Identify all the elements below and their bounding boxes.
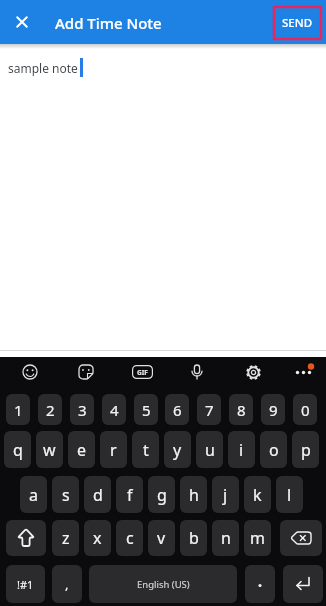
staticText: 9 [269,400,278,420]
button[interactable] [6,520,46,556]
button[interactable]: 4 [102,394,126,425]
staticText: !#1 [17,577,34,592]
button[interactable]: h [180,476,207,513]
button[interactable]: 1 [6,394,30,425]
button[interactable]: o [260,431,287,468]
button[interactable]: 6 [165,394,189,425]
staticText: , [65,575,69,593]
staticText: p [301,439,311,461]
button[interactable]: !#1 [6,565,45,603]
staticText: sample note [8,60,78,76]
staticText: s [62,484,70,506]
button[interactable]: g [148,476,175,513]
button[interactable] [239,358,267,386]
button[interactable]: k [244,476,271,513]
staticText: t [143,439,149,461]
button[interactable] [280,520,322,556]
staticText: u [205,439,215,461]
staticText: y [173,439,182,461]
staticText: o [269,439,279,461]
staticText: i [239,439,244,461]
staticText: m [250,527,265,549]
button[interactable]: i [228,431,255,468]
button[interactable] [8,8,36,36]
button[interactable]: 7 [197,394,221,425]
button[interactable]: English (US) [89,565,237,603]
staticText: w [43,439,56,461]
staticText: 7 [205,400,214,420]
staticText: n [221,527,231,549]
button[interactable]: a [20,476,47,513]
staticText: c [126,527,134,549]
button[interactable]: SEND [274,7,321,39]
staticText: 1 [14,400,23,420]
staticText: 5 [142,400,151,420]
button[interactable]: u [196,431,223,468]
button[interactable]: l [276,476,303,513]
button[interactable] [245,565,275,603]
button[interactable]: 9 [261,394,285,425]
button[interactable]: x [84,520,111,556]
button[interactable]: , [52,565,82,603]
staticText: English (US) [137,578,190,591]
staticText: z [62,527,70,549]
button[interactable] [291,358,319,386]
button[interactable]: f [116,476,143,513]
staticText: j [223,484,228,506]
staticText: q [13,439,23,461]
button[interactable]: 5 [134,394,158,425]
button[interactable]: e [68,431,95,468]
button[interactable]: c [116,520,143,556]
staticText: 2 [46,400,55,420]
button[interactable]: z [52,520,79,556]
staticText: x [93,527,102,549]
staticText: v [157,527,166,549]
button[interactable]: j [212,476,239,513]
staticText: d [93,484,103,506]
button[interactable]: b [180,520,207,556]
staticText: a [29,484,38,506]
staticText: l [287,484,292,506]
staticText: f [127,484,133,506]
staticText: 3 [78,400,87,420]
button[interactable]: s [52,476,79,513]
staticText: 6 [173,400,182,420]
button[interactable]: GIF [128,358,156,386]
button[interactable]: v [148,520,175,556]
button[interactable]: 3 [70,394,94,425]
button[interactable]: 0 [293,394,317,425]
button[interactable]: t [132,431,159,468]
staticText: 4 [110,400,119,420]
button[interactable] [16,358,44,386]
staticText: b [189,527,199,549]
button[interactable]: 8 [229,394,253,425]
button[interactable]: d [84,476,111,513]
staticText: k [253,484,262,506]
button[interactable]: q [4,431,31,468]
staticText: 8 [237,400,246,420]
button[interactable]: m [244,520,271,556]
button[interactable]: r [100,431,127,468]
staticText: Add Time Note [55,13,162,33]
button[interactable] [72,358,100,386]
button[interactable]: n [212,520,239,556]
staticText: GIF [137,368,148,377]
button[interactable]: 2 [38,394,62,425]
staticText: e [77,439,87,461]
staticText: r [110,439,117,461]
button[interactable] [183,358,211,386]
button[interactable]: w [36,431,63,468]
button[interactable] [283,565,323,603]
staticText: SEND [282,15,313,31]
button[interactable]: y [164,431,191,468]
button[interactable]: p [292,431,319,468]
staticText: g [157,484,167,506]
staticText: h [189,484,199,506]
staticText: 0 [301,400,310,420]
